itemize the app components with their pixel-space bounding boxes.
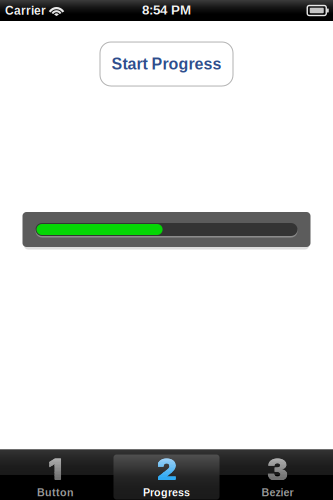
staticText: 1 bbox=[48, 450, 62, 489]
staticText: Button bbox=[37, 486, 74, 498]
button[interactable]: 1 bbox=[0, 449, 111, 500]
staticText: 2 bbox=[156, 450, 176, 489]
staticText: 2 bbox=[156, 450, 176, 489]
staticText: 2 bbox=[156, 450, 176, 489]
staticText: 1 bbox=[48, 450, 62, 489]
staticText: 1 bbox=[48, 450, 62, 489]
staticText: 2 bbox=[156, 450, 176, 489]
staticText: 2 bbox=[156, 450, 176, 489]
staticText: 3 bbox=[267, 450, 288, 489]
staticText: 1 bbox=[48, 450, 62, 489]
staticText: 1 bbox=[48, 450, 62, 489]
staticText: 3 bbox=[267, 450, 288, 489]
staticText: 2 bbox=[156, 450, 176, 489]
staticText: 1 bbox=[48, 450, 62, 489]
staticText: 2 bbox=[156, 450, 176, 489]
staticText: 1 bbox=[48, 450, 62, 489]
staticText: 3 bbox=[267, 450, 288, 489]
staticText: 3 bbox=[267, 450, 288, 489]
staticText: Bezier bbox=[261, 486, 293, 498]
button[interactable]: Start Progress bbox=[100, 42, 233, 86]
staticText: 3 bbox=[267, 450, 288, 489]
staticText: 1 bbox=[48, 450, 62, 489]
staticText: 3 bbox=[267, 450, 288, 489]
staticText: 1 bbox=[48, 450, 62, 489]
button[interactable]: 2 bbox=[111, 449, 222, 500]
staticText: 1 bbox=[48, 450, 62, 489]
button[interactable]: 3 bbox=[222, 449, 333, 500]
staticText: 1 bbox=[48, 450, 62, 489]
staticText: Carrier bbox=[5, 4, 46, 17]
staticText: 3 bbox=[267, 450, 288, 489]
staticText: 1 bbox=[48, 450, 62, 489]
staticText: 2 bbox=[156, 450, 176, 489]
staticText: 1 bbox=[48, 450, 62, 489]
staticText: 2 bbox=[156, 450, 176, 489]
staticText: 3 bbox=[267, 450, 288, 489]
staticText: 2 bbox=[156, 450, 176, 489]
staticText: 2 bbox=[156, 450, 176, 489]
staticText: Progress bbox=[143, 486, 190, 498]
staticText: 3 bbox=[267, 450, 288, 489]
staticText: 1 bbox=[48, 450, 62, 489]
staticText: 2 bbox=[156, 450, 176, 489]
staticText: 3 bbox=[267, 450, 288, 489]
staticText: 2 bbox=[156, 450, 176, 489]
staticText: 1 bbox=[48, 450, 62, 489]
staticText: 3 bbox=[267, 450, 288, 489]
staticText: 2 bbox=[156, 450, 176, 489]
staticText: 2 bbox=[156, 450, 176, 489]
staticText: 3 bbox=[267, 450, 288, 489]
staticText: Start Progress bbox=[111, 55, 221, 73]
staticText: 2 bbox=[156, 450, 176, 489]
staticText: 1 bbox=[48, 450, 62, 489]
staticText: 3 bbox=[267, 450, 288, 489]
staticText: 3 bbox=[267, 450, 288, 489]
staticText: 3 bbox=[267, 450, 288, 489]
staticText: 3 bbox=[267, 450, 288, 489]
staticText: 8:54 PM bbox=[142, 3, 191, 17]
